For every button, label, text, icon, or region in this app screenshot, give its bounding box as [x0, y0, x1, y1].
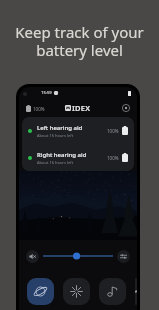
button[interactable]: Volume: [43, 250, 113, 262]
staticText: Keep track of your battery level: [0, 22, 159, 61]
button[interactable]: Settings: [119, 101, 133, 115]
button[interactable]: More: [135, 278, 137, 305]
staticText: 100%: [33, 106, 45, 112]
button[interactable]: Music: [99, 278, 126, 305]
staticText: Right hearing aid: [37, 151, 87, 159]
button[interactable]: Left hearing aid: [22, 117, 134, 144]
button[interactable]: Equalizer: [117, 250, 130, 263]
button[interactable]: Party: [63, 278, 90, 305]
staticText: IDEX: [72, 103, 91, 113]
staticText: Left hearing aid: [37, 124, 83, 132]
button[interactable]: Mute: [26, 250, 39, 263]
button[interactable]: Universal: [27, 278, 54, 305]
staticText: 15:59: [41, 90, 52, 96]
staticText: 100%: [107, 128, 119, 134]
staticText: About 16 hours left: [37, 133, 74, 138]
button[interactable]: Right hearing aid: [22, 144, 134, 171]
button[interactable]: 100%: [24, 103, 47, 114]
staticText: About 16 hours left: [37, 160, 74, 165]
staticText: 100%: [107, 155, 119, 161]
